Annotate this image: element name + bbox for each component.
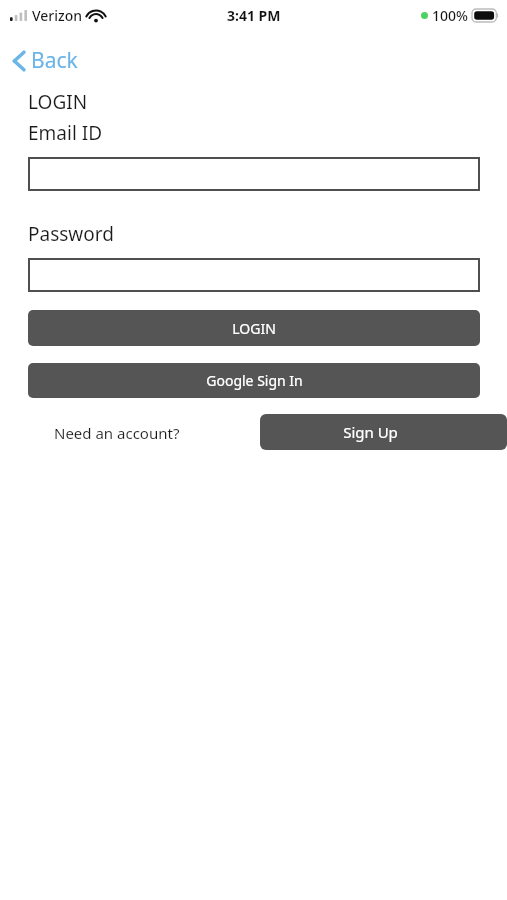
button[interactable]: Sign Up xyxy=(260,414,507,450)
staticText: Verizon xyxy=(32,6,83,25)
staticText: LOGIN xyxy=(28,89,88,115)
staticText: Need an account? xyxy=(54,423,180,443)
staticText: Sign Up xyxy=(343,422,398,442)
staticText: 100% xyxy=(432,6,468,25)
staticText: Back xyxy=(31,46,78,75)
button[interactable] xyxy=(28,258,480,292)
staticText: Password xyxy=(28,221,114,247)
button[interactable] xyxy=(28,157,480,191)
button[interactable]: Google Sign In xyxy=(28,363,480,398)
staticText: 3:41 PM xyxy=(227,6,281,25)
staticText: LOGIN xyxy=(232,319,276,338)
button[interactable]: LOGIN xyxy=(28,310,480,346)
button[interactable]: Back xyxy=(12,44,86,77)
staticText: Google Sign In xyxy=(206,371,303,390)
staticText: Email ID xyxy=(28,120,103,146)
